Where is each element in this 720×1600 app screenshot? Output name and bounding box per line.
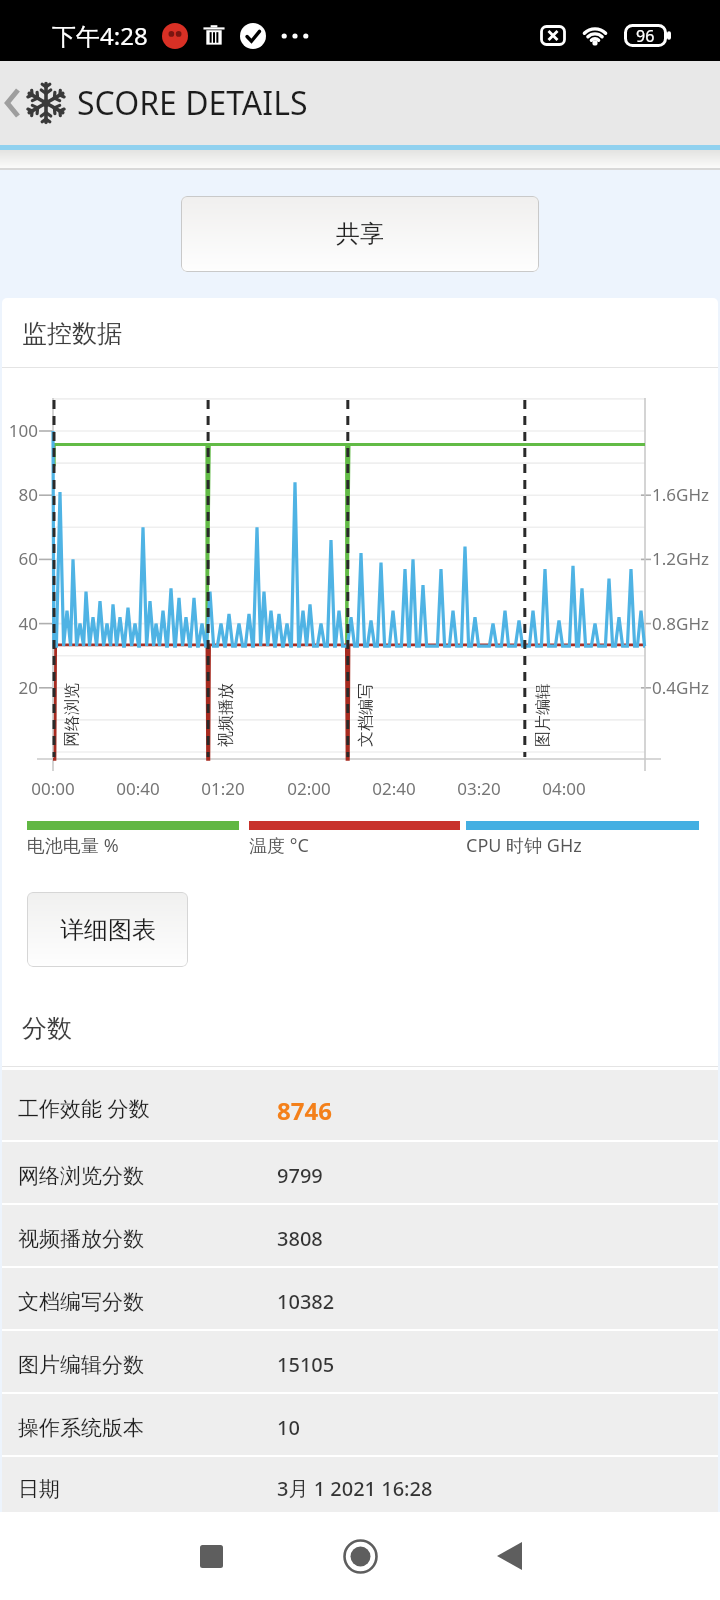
staticText: 视频播放 (216, 683, 236, 747)
staticText: 00:00 (12, 777, 94, 800)
button[interactable]: 图片编辑分数 (2, 1331, 718, 1392)
staticText: 10382 (277, 1288, 335, 1315)
staticText: 02:00 (268, 777, 350, 800)
staticText: 80 (0, 483, 38, 506)
button[interactable]: 操作系统版本 (2, 1394, 718, 1455)
button[interactable]: Recents (181, 1526, 241, 1586)
staticText: 详细图表 (60, 915, 156, 945)
staticText: 15105 (277, 1351, 335, 1378)
staticText: 01:20 (182, 777, 264, 800)
staticText: 20 (0, 676, 38, 699)
staticText: 8746 (277, 1094, 332, 1127)
staticText: 工作效能 分数 (18, 1094, 150, 1123)
staticText: 3808 (277, 1225, 323, 1252)
staticText: 网络浏览 (62, 683, 82, 747)
staticText: 操作系统版本 (18, 1415, 144, 1441)
staticText: 02:40 (353, 777, 435, 800)
staticText: 03:20 (438, 777, 520, 800)
staticText: 96 (636, 25, 655, 47)
staticText: 0.8GHz (652, 612, 709, 635)
staticText: 文档编写 (356, 683, 376, 747)
button[interactable]: Home (330, 1526, 390, 1586)
button[interactable]: 共享 (181, 196, 539, 272)
staticText: 下午4:28 (52, 19, 148, 52)
staticText: 电池电量 % (27, 833, 119, 858)
button[interactable]: Back (479, 1526, 539, 1586)
button[interactable]: 网络浏览分数 (2, 1142, 718, 1203)
staticText: SCORE DETAILS (77, 81, 308, 125)
staticText: 9799 (277, 1162, 323, 1189)
staticText: 1.2GHz (652, 547, 709, 570)
staticText: 60 (0, 547, 38, 570)
staticText: 00:40 (97, 777, 179, 800)
staticText: 文档编写分数 (18, 1289, 144, 1315)
staticText: CPU 时钟 GHz (466, 833, 582, 858)
staticText: 1.6GHz (652, 483, 709, 506)
staticText: 0.4GHz (652, 676, 709, 699)
staticText: 40 (0, 612, 38, 635)
staticText: 网络浏览分数 (18, 1163, 144, 1189)
staticText: 监控数据 (22, 318, 122, 349)
staticText: 04:00 (523, 777, 605, 800)
button[interactable]: 视频播放分数 (2, 1205, 718, 1266)
staticText: 分数 (22, 1013, 72, 1044)
staticText: 100 (0, 419, 38, 442)
staticText: 图片编辑 (533, 683, 553, 747)
staticText: 图片编辑分数 (18, 1352, 144, 1378)
staticText: 共享 (336, 219, 384, 249)
button[interactable]: 详细图表 (27, 892, 188, 967)
staticText: 温度 °C (249, 833, 309, 858)
button[interactable]: 工作效能 分数 (2, 1070, 718, 1140)
staticText: 日期 (18, 1476, 60, 1502)
button[interactable]: 日期 (2, 1457, 718, 1514)
button[interactable]: 文档编写分数 (2, 1268, 718, 1329)
staticText: 视频播放分数 (18, 1226, 144, 1252)
staticText: 10 (277, 1414, 300, 1441)
staticText: 3月 1 2021 16:28 (277, 1475, 433, 1502)
button[interactable]: Back (0, 77, 24, 129)
